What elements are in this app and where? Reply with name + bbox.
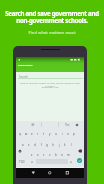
button[interactable]: q: [17, 130, 23, 138]
staticText: b: [55, 153, 57, 157]
staticText: g: [46, 143, 48, 147]
staticText: Type in the first letters of your school…: [16, 81, 84, 87]
staticText: postcode / zip: [16, 85, 84, 88]
button[interactable]: a: [20, 141, 26, 149]
button[interactable]: j: [56, 141, 62, 149]
button[interactable]: u: [53, 130, 59, 138]
staticText: The: [65, 123, 70, 127]
staticText: l: [71, 143, 72, 147]
staticText: k: [64, 143, 66, 147]
button[interactable]: y: [47, 130, 53, 138]
staticText: o: [67, 132, 69, 136]
button[interactable]: b: [53, 151, 59, 159]
staticText: z: [31, 153, 33, 157]
staticText: f: [41, 143, 42, 147]
button[interactable]: k: [62, 141, 68, 149]
staticText: j: [59, 143, 60, 147]
staticText: e: [31, 132, 33, 136]
button[interactable]: c: [41, 151, 47, 159]
staticText: n: [61, 153, 63, 157]
staticText: t: [43, 132, 45, 136]
button[interactable]: r: [35, 130, 41, 138]
button[interactable]: m: [65, 151, 71, 159]
button[interactable]: d: [32, 141, 38, 149]
button[interactable]: n: [59, 151, 65, 159]
staticText: School Search: [18, 64, 33, 67]
staticText: w: [25, 132, 28, 136]
button[interactable]: i: [59, 130, 65, 138]
button[interactable]: w: [23, 130, 29, 138]
button[interactable]: h: [50, 141, 56, 149]
staticText: Search: [19, 75, 28, 79]
staticText: m: [67, 153, 70, 157]
staticText: Search and save government and non-gover…: [2, 9, 102, 25]
other: Backspace: [78, 149, 82, 153]
button[interactable]: e: [29, 130, 35, 138]
button[interactable]: x: [35, 151, 41, 159]
staticText: r: [37, 132, 39, 136]
staticText: u: [55, 132, 57, 136]
button[interactable]: f: [38, 141, 44, 149]
button[interactable]: z: [29, 151, 35, 159]
staticText: a: [22, 143, 24, 147]
button[interactable]: s: [26, 141, 32, 149]
staticText: y: [49, 132, 51, 136]
staticText: c: [43, 153, 45, 157]
button[interactable]: o: [65, 130, 71, 138]
button[interactable]: l: [68, 141, 74, 149]
button[interactable]: ?123: [19, 160, 25, 164]
staticText: v: [49, 153, 51, 157]
other: Keyboard settings: [75, 123, 79, 127]
staticText: d: [34, 143, 36, 147]
staticText: h: [52, 143, 54, 147]
button[interactable]: g: [44, 141, 50, 149]
button[interactable]: School Search: [16, 57, 84, 72]
other: Shift: [18, 149, 22, 153]
button[interactable]: Enter: [77, 158, 82, 163]
staticText: p: [73, 132, 75, 136]
staticText: q: [19, 132, 21, 136]
staticText: s: [28, 143, 30, 147]
button[interactable]: v: [47, 151, 53, 159]
button[interactable]: t: [41, 130, 47, 138]
staticText: x: [37, 153, 39, 157]
button[interactable]: p: [71, 130, 77, 138]
staticText: Find what matters most: [0, 30, 104, 36]
staticText: i: [62, 132, 63, 136]
